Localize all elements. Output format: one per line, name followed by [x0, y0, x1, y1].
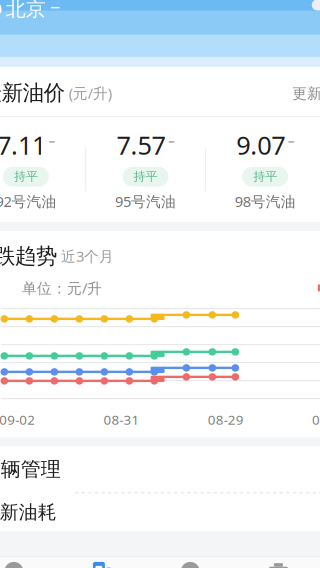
staticText: 98号汽油 — [235, 191, 296, 211]
staticText: 持平 — [134, 169, 158, 184]
staticText: 持平 — [253, 169, 277, 184]
staticText: 08-29 — [208, 411, 244, 428]
staticText: 7.11 — [0, 128, 46, 162]
button[interactable]: 首页 — [0, 557, 58, 568]
staticText: 单位：元/升 — [22, 278, 102, 298]
staticText: 08-27 — [312, 411, 320, 428]
button[interactable]: 北京 — [0, 0, 62, 26]
staticText: 更新时间:2025-09-02 — [292, 83, 320, 103]
staticText: 95号汽油 — [115, 191, 176, 211]
button[interactable]: 油耗记录 — [58, 557, 146, 568]
staticText: 持平 — [14, 169, 38, 184]
staticText: 北京 — [6, 0, 46, 21]
staticText: 9.07 — [236, 128, 285, 162]
button[interactable]: 附近 — [146, 557, 234, 568]
staticText: 08-31 — [103, 411, 139, 428]
staticText: 最新油价 — [0, 80, 65, 106]
button[interactable]: 工具 — [234, 557, 320, 568]
staticText: 车辆管理 — [0, 457, 61, 482]
staticText: 7.57 — [117, 128, 166, 162]
button[interactable]: 车辆管理 — [0, 446, 320, 492]
staticText: 最新油耗 — [0, 501, 57, 524]
staticText: (元/升) — [65, 83, 112, 103]
staticText: 09-02 — [0, 411, 35, 428]
staticText: 近3个月 — [57, 246, 114, 266]
staticText: 92号汽油 — [0, 191, 56, 211]
staticText: 涨跌趋势 — [0, 243, 57, 269]
